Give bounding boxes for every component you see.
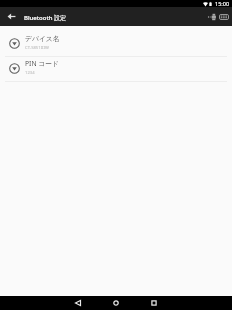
staticText: CT-S851IIIW (25, 45, 49, 51)
staticText: デバイス名 (25, 34, 60, 43)
button[interactable]: Home (104, 296, 128, 310)
staticText: Bluetooth 設定 (24, 14, 67, 22)
button[interactable]: Battery level (218, 7, 229, 26)
staticText: 1234 (25, 70, 35, 76)
button[interactable]: Printer status (207, 7, 217, 26)
button[interactable]: Back (0, 7, 24, 26)
staticText: PIN コード (25, 59, 60, 68)
button[interactable]: Recents (142, 296, 166, 310)
button[interactable]: Back (66, 296, 90, 310)
button[interactable]: PIN コード (0, 57, 232, 81)
staticText: 15:00 (215, 0, 230, 7)
button[interactable]: デバイス名 (0, 32, 232, 56)
